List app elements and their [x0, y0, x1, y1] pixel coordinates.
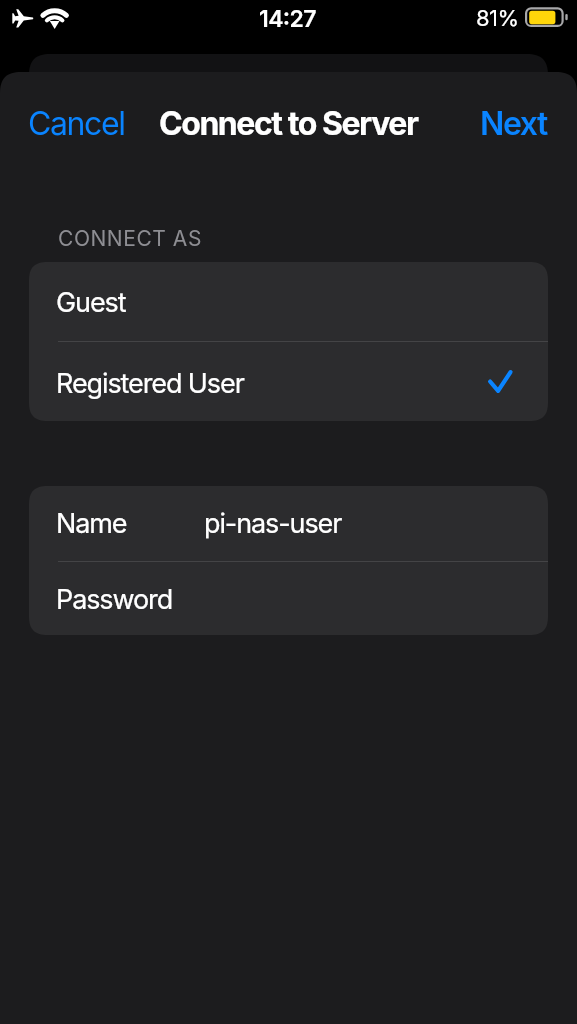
staticText: 14:27: [259, 5, 316, 33]
button[interactable]: Name: [29, 486, 548, 561]
other: Airplane mode: [11, 7, 34, 29]
staticText: Cancel: [28, 104, 125, 143]
button[interactable]: Password: [29, 562, 548, 635]
staticText: pi-nas-user: [204, 507, 342, 540]
button[interactable]: Cancel: [15, 95, 138, 152]
other: Battery 81 percent: [525, 6, 573, 32]
staticText: Next: [480, 104, 547, 143]
other: Wi-Fi: [40, 7, 70, 31]
button[interactable]: Guest: [29, 262, 548, 341]
staticText: Connect to Server: [159, 104, 418, 143]
staticText: Registered User: [56, 367, 244, 400]
staticText: 81%: [476, 5, 519, 32]
staticText: Guest: [56, 286, 126, 319]
button[interactable]: Registered User: [29, 342, 548, 421]
staticText: CONNECT AS: [58, 226, 202, 251]
staticText: Password: [56, 583, 173, 616]
button[interactable]: Next: [467, 95, 560, 152]
staticText: Name: [56, 507, 204, 540]
